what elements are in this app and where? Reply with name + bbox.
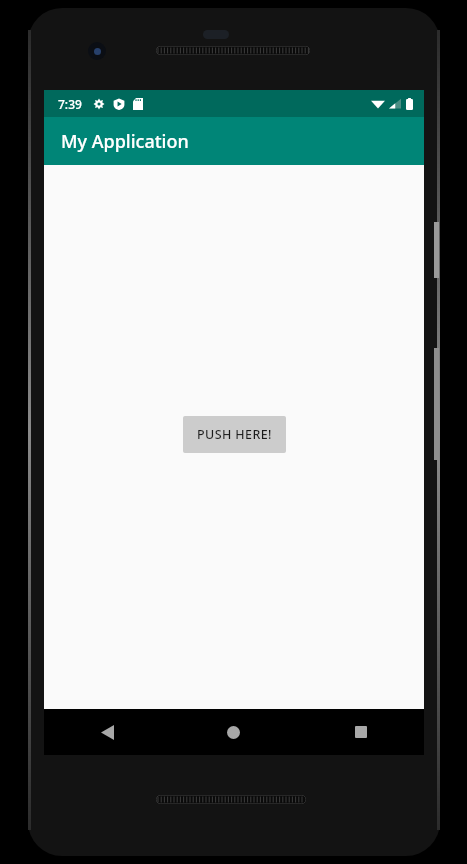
button[interactable]: Home [170,709,297,755]
button[interactable]: Back [44,709,170,755]
button[interactable]: Recent apps [297,709,424,755]
staticText: PUSH HERE! [197,426,272,443]
staticText: 7:39 [58,96,82,112]
staticText: My Application [61,129,189,154]
button[interactable]: PUSH HERE! [183,416,286,453]
